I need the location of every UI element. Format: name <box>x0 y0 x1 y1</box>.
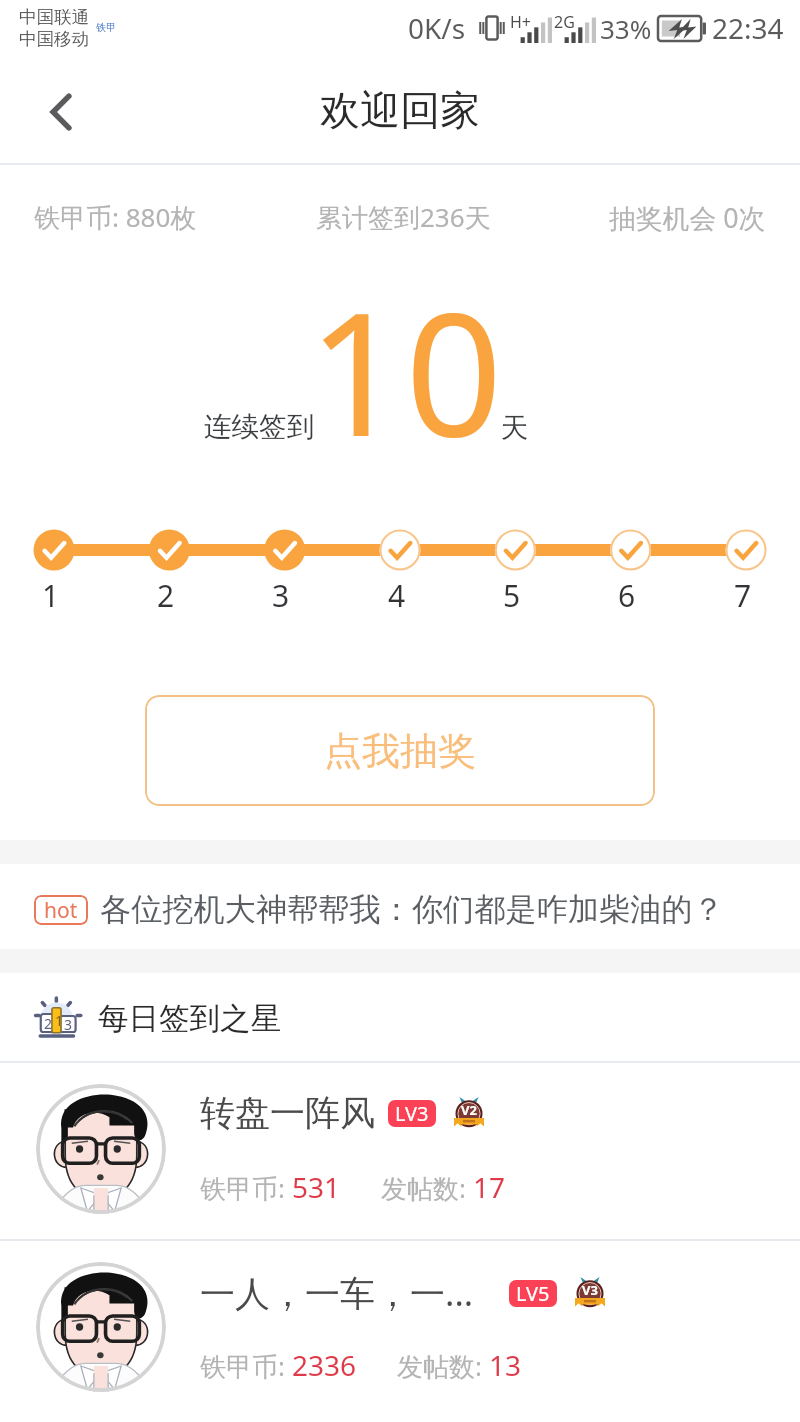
staticText: 13 <box>489 1346 522 1384</box>
staticText: 0K/s <box>408 9 466 47</box>
staticText: 2 <box>44 1014 53 1033</box>
staticText: 发帖数: <box>381 1170 473 1206</box>
staticText: 一人，一车，一... <box>200 1269 474 1317</box>
staticText: 点我抽奖 <box>324 727 476 775</box>
staticText: 2 <box>157 575 175 616</box>
staticText: 17 <box>473 1168 506 1206</box>
staticText: V3 <box>582 1281 598 1299</box>
staticText: 铁甲币: <box>200 1348 292 1384</box>
staticText: 中国联通 <box>19 6 89 28</box>
staticText: V2 <box>461 1101 477 1119</box>
staticText: 6 <box>618 575 636 616</box>
staticText: 各位挖机大神帮帮我：你们都是咋加柴油的？ <box>100 890 724 929</box>
staticText: 531 <box>292 1168 341 1206</box>
staticText: 铁甲 <box>96 21 116 34</box>
staticText: hot <box>44 896 78 925</box>
button[interactable]: 点我抽奖 <box>145 695 655 806</box>
staticText: 5 <box>503 575 521 616</box>
button[interactable]: 2 <box>0 975 800 1063</box>
staticText: 转盘一阵风 <box>200 1091 375 1135</box>
staticText: 7 <box>734 575 752 616</box>
staticText: 10 <box>308 254 503 486</box>
staticText: 22:34 <box>712 9 784 47</box>
staticText: 2G <box>554 11 575 33</box>
staticText: 1 <box>55 1011 64 1030</box>
staticText: 2336 <box>292 1346 357 1384</box>
staticText: 抽奖机会 0次 <box>609 199 766 236</box>
staticText: 33% <box>600 11 652 46</box>
button[interactable]: 转盘一阵风 <box>0 1061 800 1239</box>
staticText: 3 <box>64 1015 73 1034</box>
staticText: LV5 <box>516 1280 550 1307</box>
staticText: 每日签到之星 <box>98 1000 281 1038</box>
staticText: LV3 <box>395 1100 429 1127</box>
staticText: 连续签到 <box>204 410 314 445</box>
button[interactable]: hot <box>0 867 800 952</box>
staticText: 铁甲币: <box>200 1170 292 1206</box>
staticText: 铁甲币: 880枚 <box>34 199 197 235</box>
staticText: 3 <box>272 575 290 616</box>
button[interactable]: Back <box>21 72 101 152</box>
staticText: 欢迎回家 <box>320 85 480 135</box>
staticText: 4 <box>388 575 406 616</box>
staticText: 累计签到236天 <box>316 199 491 235</box>
staticText: H+ <box>510 11 532 33</box>
staticText: 中国移动 <box>19 28 89 50</box>
staticText: 发帖数: <box>397 1348 489 1384</box>
button[interactable]: 一人，一车，一... <box>0 1239 800 1417</box>
staticText: 天 <box>501 411 529 446</box>
staticText: 1 <box>42 575 60 616</box>
